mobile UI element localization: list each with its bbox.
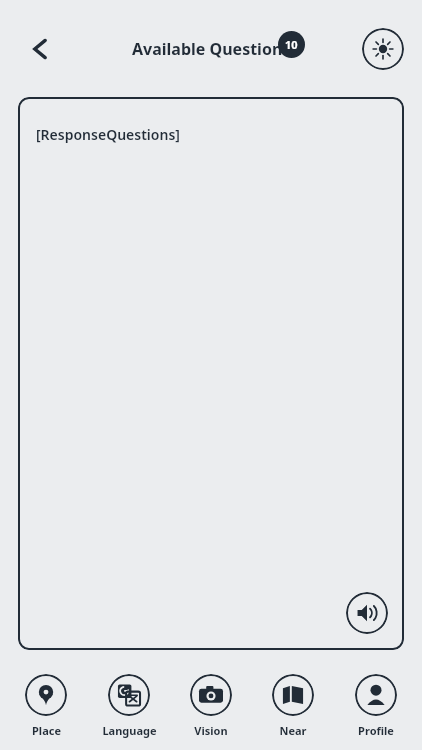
- staticText: [ResponseQuestions]: [36, 125, 180, 144]
- button[interactable]: Language: [93, 672, 165, 738]
- button[interactable]: [ResponseQuestions]: [18, 97, 404, 650]
- button[interactable]: Back: [18, 27, 62, 71]
- staticText: Near: [279, 723, 307, 738]
- button[interactable]: Vision: [175, 672, 247, 738]
- button[interactable]: Near: [257, 672, 329, 738]
- staticText: Language: [102, 723, 157, 738]
- staticText: Available Questions: [132, 38, 291, 60]
- button[interactable]: Play audio: [346, 592, 388, 634]
- button[interactable]: Place: [10, 672, 82, 738]
- button[interactable]: Brightness: [362, 28, 404, 70]
- button[interactable]: Profile: [340, 672, 412, 738]
- staticText: Profile: [358, 723, 394, 738]
- staticText: Place: [32, 723, 61, 738]
- staticText: Vision: [194, 723, 228, 738]
- button[interactable]: 10: [278, 31, 305, 58]
- staticText: 10: [285, 37, 298, 52]
